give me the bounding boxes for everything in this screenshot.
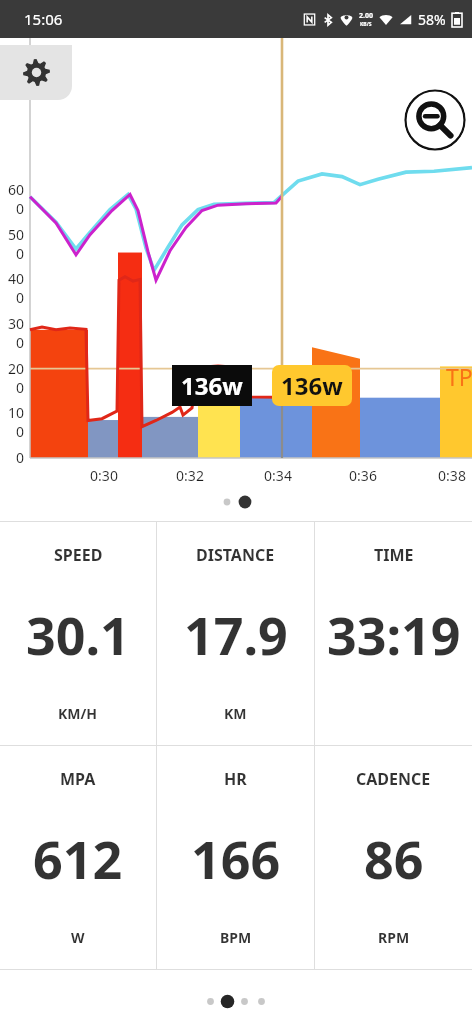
staticText: 30.1	[26, 599, 130, 670]
staticText: 58%	[418, 10, 446, 29]
staticText: BPM	[220, 928, 252, 947]
staticText: SPEED	[54, 544, 103, 566]
staticText: 0:30	[82, 466, 126, 485]
staticText: 86	[364, 823, 424, 894]
staticText: RPM	[378, 928, 410, 947]
button[interactable]: HR	[157, 746, 314, 969]
staticText: 300	[0, 314, 24, 352]
staticText: DISTANCE	[196, 544, 275, 566]
staticText: 136w	[181, 369, 243, 402]
staticText: KM	[224, 704, 247, 723]
staticText: KM/H	[58, 704, 98, 723]
staticText: 612	[33, 823, 123, 894]
button[interactable]: SPEED	[0, 522, 156, 745]
staticText: 136w	[281, 369, 343, 402]
button[interactable]: MPA	[0, 746, 156, 969]
staticText: 17.9	[184, 599, 288, 670]
button[interactable]: DISTANCE	[157, 522, 314, 745]
button[interactable]: CADENCE	[315, 746, 472, 969]
staticText: TP	[446, 361, 472, 392]
staticText: 0:38	[430, 466, 472, 485]
staticText: W	[71, 928, 85, 947]
staticText: 2.00	[359, 11, 373, 21]
staticText: CADENCE	[356, 768, 431, 790]
staticText: 166	[191, 823, 281, 894]
staticText: 500	[0, 225, 24, 263]
button[interactable]: TIME	[315, 522, 472, 745]
staticText: 0:32	[168, 466, 212, 485]
staticText: 200	[0, 359, 24, 397]
button[interactable]: Zoom out	[404, 89, 466, 151]
staticText: KB/S	[360, 21, 372, 28]
staticText: 33:19	[327, 599, 461, 670]
staticText: 600	[0, 180, 24, 218]
staticText: HR	[224, 768, 247, 790]
button[interactable]: Settings	[0, 45, 72, 100]
staticText: 15:06	[24, 9, 63, 29]
staticText: 0:36	[341, 466, 385, 485]
staticText: 400	[0, 269, 24, 307]
staticText: TIME	[374, 544, 414, 566]
staticText: 0	[0, 448, 24, 467]
staticText: 0:34	[256, 466, 300, 485]
staticText: 100	[0, 403, 24, 441]
staticText: MPA	[60, 768, 96, 790]
